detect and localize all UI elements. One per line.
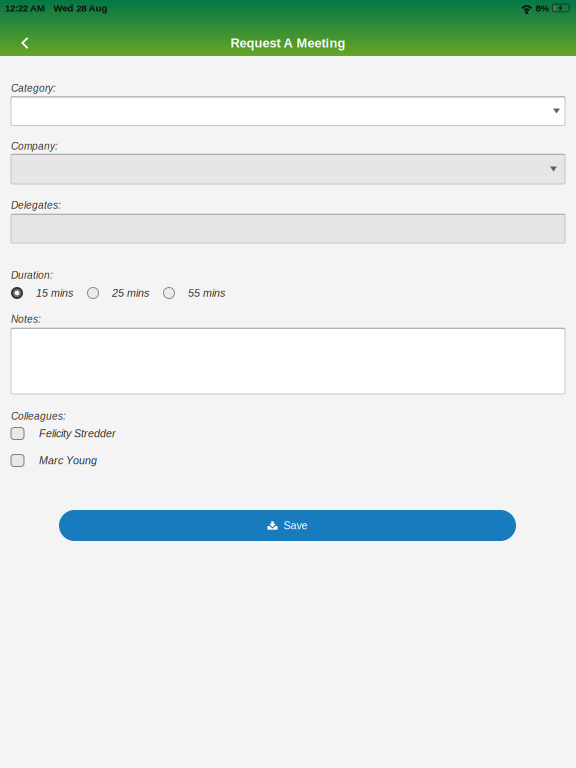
- staticText: Company:: [11, 140, 58, 152]
- staticText: Save: [283, 519, 307, 531]
- staticText: Notes:: [11, 313, 41, 325]
- staticText: 25 mins: [112, 287, 149, 299]
- button[interactable]: Save: [59, 510, 516, 541]
- button[interactable]: 25 mins: [87, 287, 149, 299]
- staticText: 12:22 AM: [5, 3, 45, 13]
- staticText: Felicity Stredder: [39, 427, 116, 439]
- staticText: 8%: [535, 3, 549, 13]
- staticText: Delegates:: [11, 199, 61, 211]
- staticText: Request A Meeting: [230, 36, 345, 50]
- button[interactable]: Back: [3, 26, 47, 60]
- staticText: 55 mins: [188, 287, 225, 299]
- button[interactable]: Category: [11, 96, 565, 125]
- staticText: Wed 28 Aug: [53, 3, 107, 13]
- staticText: Category:: [11, 82, 56, 94]
- staticText: Colleagues:: [11, 410, 66, 422]
- button[interactable]: Company: [11, 154, 565, 184]
- button[interactable]: Felicity Stredder: [11, 423, 565, 443]
- staticText: Duration:: [11, 269, 53, 281]
- staticText: 15 mins: [36, 287, 73, 299]
- button[interactable]: Marc Young: [11, 450, 565, 470]
- button[interactable]: 15 mins: [11, 287, 73, 299]
- staticText: Marc Young: [39, 454, 97, 466]
- button[interactable]: 55 mins: [163, 287, 225, 299]
